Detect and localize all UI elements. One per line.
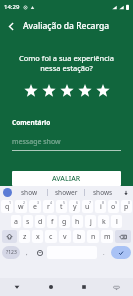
staticText: r	[47, 202, 50, 212]
button[interactable]: r	[43, 200, 54, 213]
button[interactable]: Teclado Google	[3, 188, 12, 197]
button[interactable]: t	[56, 200, 67, 213]
button[interactable]: w	[15, 200, 27, 213]
button[interactable]: a	[11, 215, 21, 228]
staticText: c	[49, 232, 53, 242]
button[interactable]: x	[32, 230, 43, 243]
button[interactable]: Estrela 5	[94, 82, 112, 100]
staticText: a	[14, 217, 18, 227]
staticText: 2	[23, 200, 26, 205]
staticText: n	[91, 232, 96, 242]
staticText: Como foi a sua experiência nessa estação…	[12, 53, 121, 73]
button[interactable]: .	[99, 246, 109, 259]
button[interactable]: Enviar	[111, 246, 131, 259]
staticText: q	[5, 202, 10, 212]
staticText: w	[18, 202, 24, 212]
button[interactable]: Estrela 4	[76, 82, 94, 100]
staticText: d	[38, 217, 43, 227]
button[interactable]: p	[121, 200, 132, 213]
button[interactable]: l	[111, 215, 122, 228]
staticText: 5	[63, 200, 66, 205]
button[interactable]: j	[85, 215, 96, 228]
button[interactable]: AVALIAR	[12, 171, 121, 186]
button[interactable]: k	[98, 215, 109, 228]
button[interactable]: v	[59, 230, 71, 243]
staticText: u	[85, 202, 90, 212]
staticText: x	[36, 232, 40, 242]
button[interactable]: u	[82, 200, 93, 213]
button[interactable]: q	[1, 200, 13, 213]
button[interactable]: shows	[85, 188, 121, 197]
staticText: 0	[128, 200, 131, 205]
staticText: t	[60, 202, 63, 212]
staticText: shower	[55, 188, 78, 197]
button[interactable]: ,	[22, 246, 32, 259]
staticText: ?123	[6, 249, 17, 256]
button[interactable]: o	[108, 200, 119, 213]
button[interactable]: Backspace	[115, 230, 131, 243]
button[interactable]: i	[95, 200, 106, 213]
staticText: f	[51, 217, 54, 227]
staticText: m	[104, 232, 111, 242]
staticText: show	[21, 188, 38, 197]
button[interactable]: Ocultar teclado	[100, 278, 133, 296]
button[interactable]: m	[101, 230, 113, 243]
staticText: z	[23, 232, 27, 242]
staticText: 4	[50, 200, 53, 205]
staticText: .	[103, 249, 105, 257]
button[interactable]: ?123	[2, 246, 20, 259]
staticText: p	[124, 202, 129, 212]
button[interactable]: Recentes	[67, 278, 100, 296]
staticText: g	[62, 217, 67, 227]
staticText: h	[75, 217, 80, 227]
button[interactable]: Estrela 1	[22, 82, 40, 100]
staticText: message show	[12, 137, 61, 147]
button[interactable]: Início	[34, 278, 67, 296]
staticText: v	[63, 232, 67, 242]
button[interactable]: message show	[12, 134, 121, 150]
button[interactable]: c	[45, 230, 57, 243]
staticText: o	[111, 202, 116, 212]
staticText: i	[100, 202, 102, 212]
button[interactable]: y	[69, 200, 80, 213]
button[interactable]: e	[29, 200, 41, 213]
button[interactable]: Expandir	[121, 188, 130, 197]
button[interactable]: Voltar	[0, 15, 22, 37]
button[interactable]: s	[23, 215, 33, 228]
staticText: b	[77, 232, 82, 242]
staticText: l	[116, 217, 118, 227]
staticText: 8	[102, 200, 105, 205]
button[interactable]: h	[72, 215, 83, 228]
staticText: y	[73, 202, 77, 212]
staticText: 3	[37, 200, 40, 205]
staticText: j	[90, 217, 92, 227]
staticText: 1	[9, 200, 12, 205]
button[interactable]: Voltar	[0, 278, 34, 296]
staticText: shows	[93, 188, 113, 197]
button[interactable]: d	[35, 215, 45, 228]
staticText: e	[33, 202, 37, 212]
staticText: AVALIAR	[52, 174, 81, 184]
button[interactable]: Estrela 3	[58, 82, 76, 100]
staticText: 9	[115, 200, 118, 205]
button[interactable]: show	[12, 188, 47, 197]
button[interactable]: f	[47, 215, 57, 228]
staticText: Avaliação da Recarga	[23, 20, 110, 32]
staticText: 14:29	[4, 3, 20, 11]
button[interactable]: shower	[48, 188, 84, 197]
button[interactable]: z	[19, 230, 30, 243]
staticText: s	[26, 217, 30, 227]
staticText: 7	[89, 200, 92, 205]
button[interactable]: g	[59, 215, 70, 228]
button[interactable]: n	[87, 230, 99, 243]
button[interactable]: b	[73, 230, 85, 243]
staticText: ,	[26, 249, 28, 257]
staticText: 6	[76, 200, 79, 205]
staticText: k	[102, 217, 106, 227]
button[interactable]: Emoji	[34, 246, 45, 259]
staticText: Comentário	[12, 118, 51, 127]
button[interactable]: Estrela 2	[40, 82, 58, 100]
button[interactable]: Shift	[2, 230, 17, 243]
